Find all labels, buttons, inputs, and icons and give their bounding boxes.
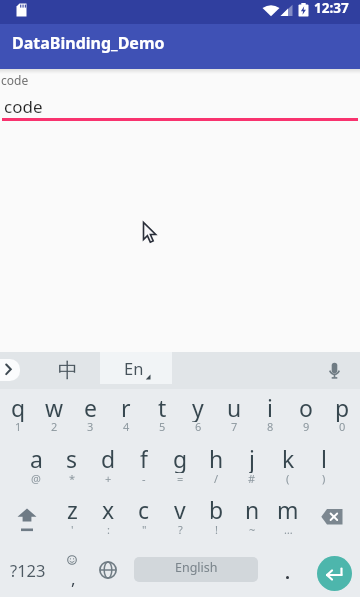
button[interactable] bbox=[234, 495, 270, 548]
staticText: j bbox=[249, 443, 255, 473]
staticText: @ bbox=[31, 471, 41, 486]
staticText: 2 bbox=[51, 419, 58, 434]
staticText: z bbox=[67, 494, 78, 524]
button[interactable] bbox=[288, 390, 324, 443]
staticText: d bbox=[101, 443, 116, 473]
staticText: = bbox=[177, 471, 184, 486]
button[interactable] bbox=[318, 354, 352, 388]
button[interactable] bbox=[90, 548, 126, 597]
staticText: 1 bbox=[15, 419, 22, 434]
staticText: ? bbox=[178, 522, 183, 537]
staticText: u bbox=[227, 392, 242, 422]
staticText: 12:37 bbox=[314, 0, 349, 17]
button[interactable] bbox=[270, 443, 306, 496]
button[interactable]: DataBinding_Demo bbox=[0, 24, 360, 69]
staticText: 5 bbox=[159, 419, 166, 434]
staticText: : bbox=[107, 522, 110, 537]
staticText: i bbox=[267, 392, 273, 422]
staticText: m bbox=[277, 494, 299, 524]
staticText: o bbox=[299, 392, 313, 422]
button[interactable] bbox=[162, 495, 198, 548]
staticText: 6 bbox=[195, 419, 202, 434]
button[interactable] bbox=[108, 390, 144, 443]
staticText: b bbox=[209, 494, 224, 524]
staticText: ~ bbox=[249, 522, 256, 537]
button[interactable] bbox=[216, 390, 252, 443]
button[interactable] bbox=[72, 390, 108, 443]
staticText: 中 bbox=[58, 358, 78, 383]
button[interactable] bbox=[18, 443, 54, 496]
button[interactable] bbox=[54, 548, 90, 597]
button[interactable] bbox=[270, 495, 306, 548]
button[interactable] bbox=[252, 390, 288, 443]
button[interactable] bbox=[0, 390, 36, 443]
button[interactable] bbox=[36, 390, 72, 443]
staticText: 0 bbox=[339, 419, 346, 434]
button[interactable] bbox=[317, 556, 352, 591]
button[interactable] bbox=[180, 390, 216, 443]
staticText: r bbox=[121, 392, 131, 422]
staticText: g bbox=[173, 443, 188, 473]
button[interactable] bbox=[0, 548, 54, 597]
button[interactable] bbox=[90, 495, 126, 548]
staticText: y bbox=[192, 392, 204, 422]
staticText: q bbox=[11, 392, 26, 422]
staticText: 9 bbox=[303, 419, 310, 434]
staticText: * bbox=[69, 471, 76, 486]
button[interactable] bbox=[270, 548, 306, 597]
staticText: c bbox=[138, 494, 150, 524]
button[interactable] bbox=[198, 495, 234, 548]
button[interactable] bbox=[144, 390, 180, 443]
button[interactable] bbox=[0, 69, 360, 124]
staticText: 8 bbox=[267, 419, 274, 434]
button[interactable] bbox=[50, 352, 88, 389]
staticText: - bbox=[142, 471, 146, 486]
button[interactable] bbox=[90, 443, 126, 496]
staticText: n bbox=[245, 494, 260, 524]
staticText: … bbox=[284, 522, 293, 537]
button[interactable] bbox=[126, 495, 162, 548]
staticText: w bbox=[45, 392, 64, 422]
staticText: code bbox=[4, 95, 43, 118]
staticText: English bbox=[175, 559, 218, 576]
button[interactable] bbox=[100, 352, 172, 384]
staticText: v bbox=[174, 494, 186, 524]
staticText: a bbox=[30, 443, 43, 473]
staticText: 7 bbox=[231, 419, 238, 434]
button[interactable] bbox=[324, 390, 360, 443]
staticText: / bbox=[214, 471, 219, 486]
staticText: l bbox=[321, 443, 327, 473]
button[interactable] bbox=[306, 495, 360, 548]
staticText: ( bbox=[286, 471, 290, 486]
button[interactable] bbox=[198, 443, 234, 496]
staticText: s bbox=[66, 443, 78, 473]
staticText: e bbox=[84, 392, 97, 422]
button[interactable] bbox=[234, 443, 270, 496]
staticText: f bbox=[140, 443, 148, 473]
staticText: k bbox=[282, 443, 295, 473]
staticText: p bbox=[335, 392, 350, 422]
staticText: # bbox=[248, 471, 256, 486]
button[interactable] bbox=[54, 495, 90, 548]
staticText: DataBinding_Demo bbox=[12, 32, 165, 54]
staticText: ) bbox=[322, 471, 326, 486]
button[interactable] bbox=[54, 443, 90, 496]
button[interactable] bbox=[0, 495, 54, 548]
staticText: ' bbox=[71, 522, 74, 537]
staticText: ?123 bbox=[10, 559, 46, 581]
staticText: 4 bbox=[123, 419, 130, 434]
staticText: code bbox=[1, 72, 29, 88]
staticText: t bbox=[158, 392, 167, 422]
button[interactable] bbox=[162, 443, 198, 496]
button[interactable] bbox=[126, 443, 162, 496]
staticText: En bbox=[124, 357, 144, 379]
button[interactable] bbox=[0, 359, 20, 381]
staticText: + bbox=[105, 471, 112, 486]
staticText: x bbox=[102, 494, 115, 524]
staticText: ! bbox=[215, 522, 218, 537]
button[interactable] bbox=[134, 557, 258, 582]
staticText: h bbox=[209, 443, 224, 473]
button[interactable] bbox=[306, 443, 342, 496]
staticText: 3 bbox=[87, 419, 94, 434]
staticText: " bbox=[142, 522, 147, 537]
